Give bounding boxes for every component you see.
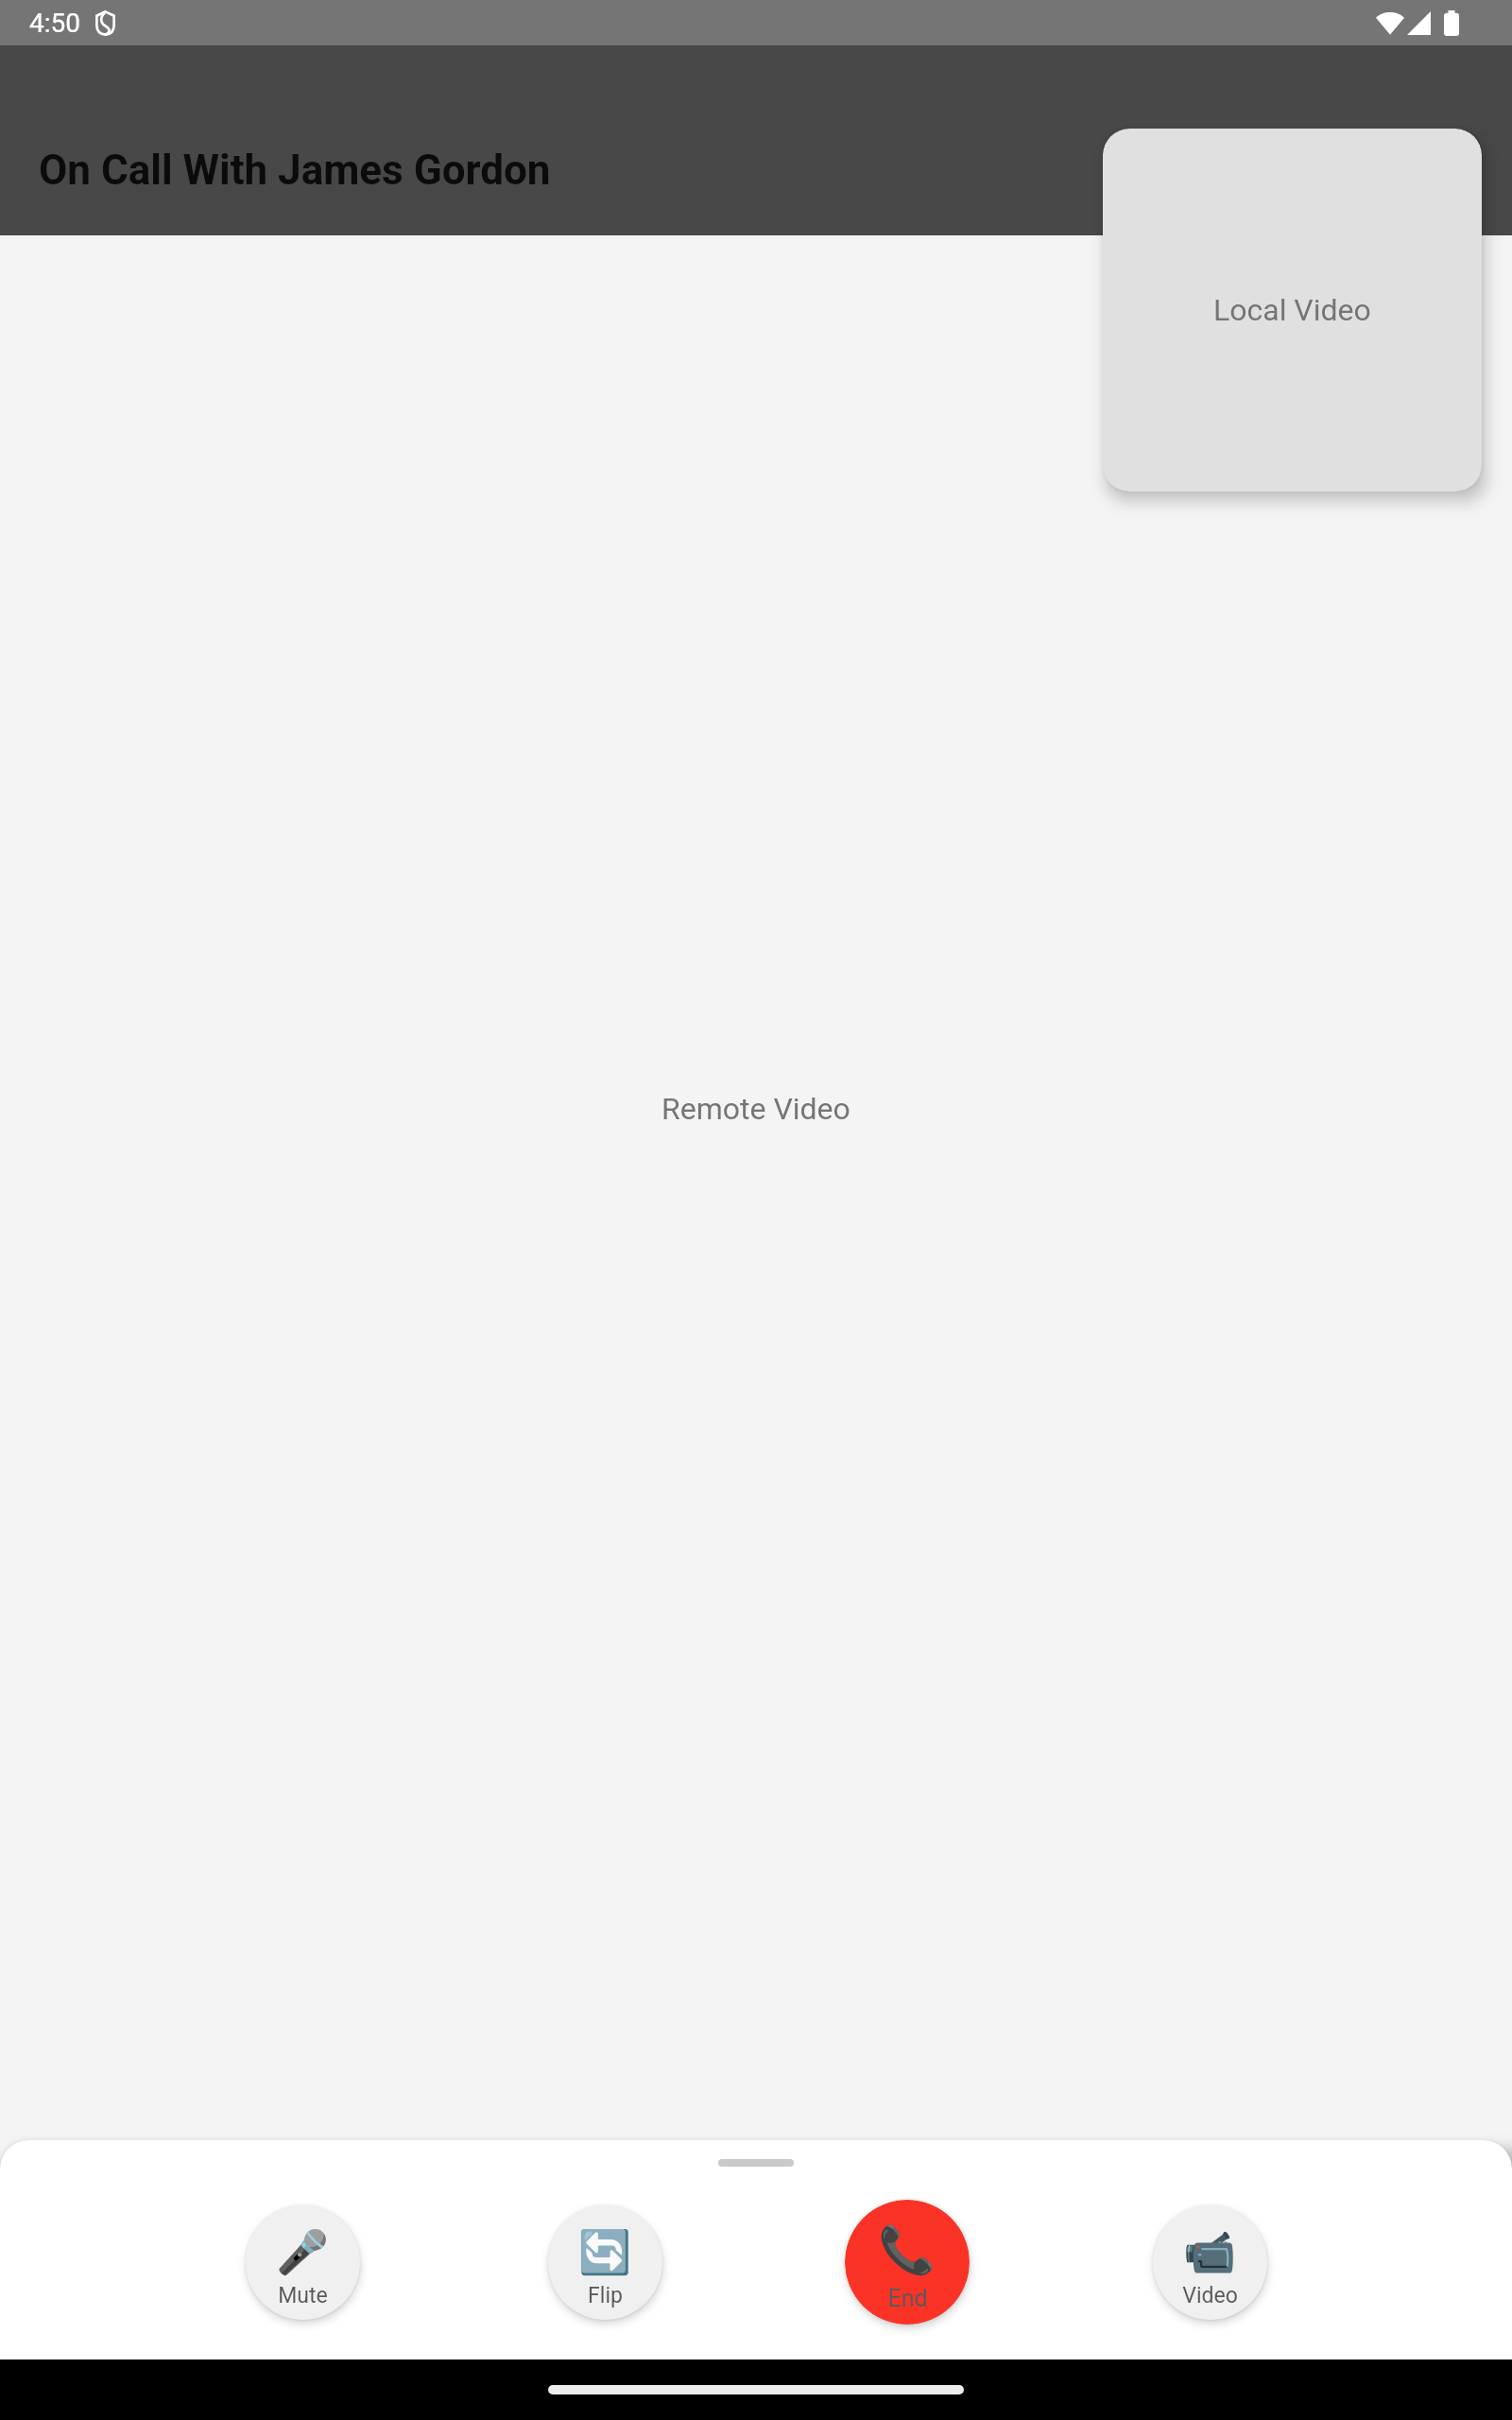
staticText: Mute	[278, 2283, 328, 2308]
staticText: Flip	[588, 2283, 623, 2308]
button[interactable]: Mute	[246, 2205, 360, 2320]
staticText: 🎤	[276, 2227, 330, 2277]
button[interactable]: Video	[1153, 2205, 1267, 2320]
button[interactable]: Flip	[548, 2205, 662, 2320]
staticText: Remote Video	[661, 1091, 850, 1127]
staticText: Local Video	[1213, 292, 1371, 328]
staticText: End	[887, 2285, 928, 2312]
staticText: 4:50	[29, 8, 80, 39]
staticText: On Call With James Gordon	[39, 146, 551, 195]
staticText: 🔄	[578, 2227, 632, 2277]
staticText: Video	[1182, 2283, 1238, 2308]
button[interactable]: End	[845, 2200, 970, 2325]
staticText: 📞	[878, 2223, 936, 2277]
staticText: 📹	[1183, 2227, 1237, 2277]
button[interactable]: Local Video	[1103, 129, 1482, 492]
